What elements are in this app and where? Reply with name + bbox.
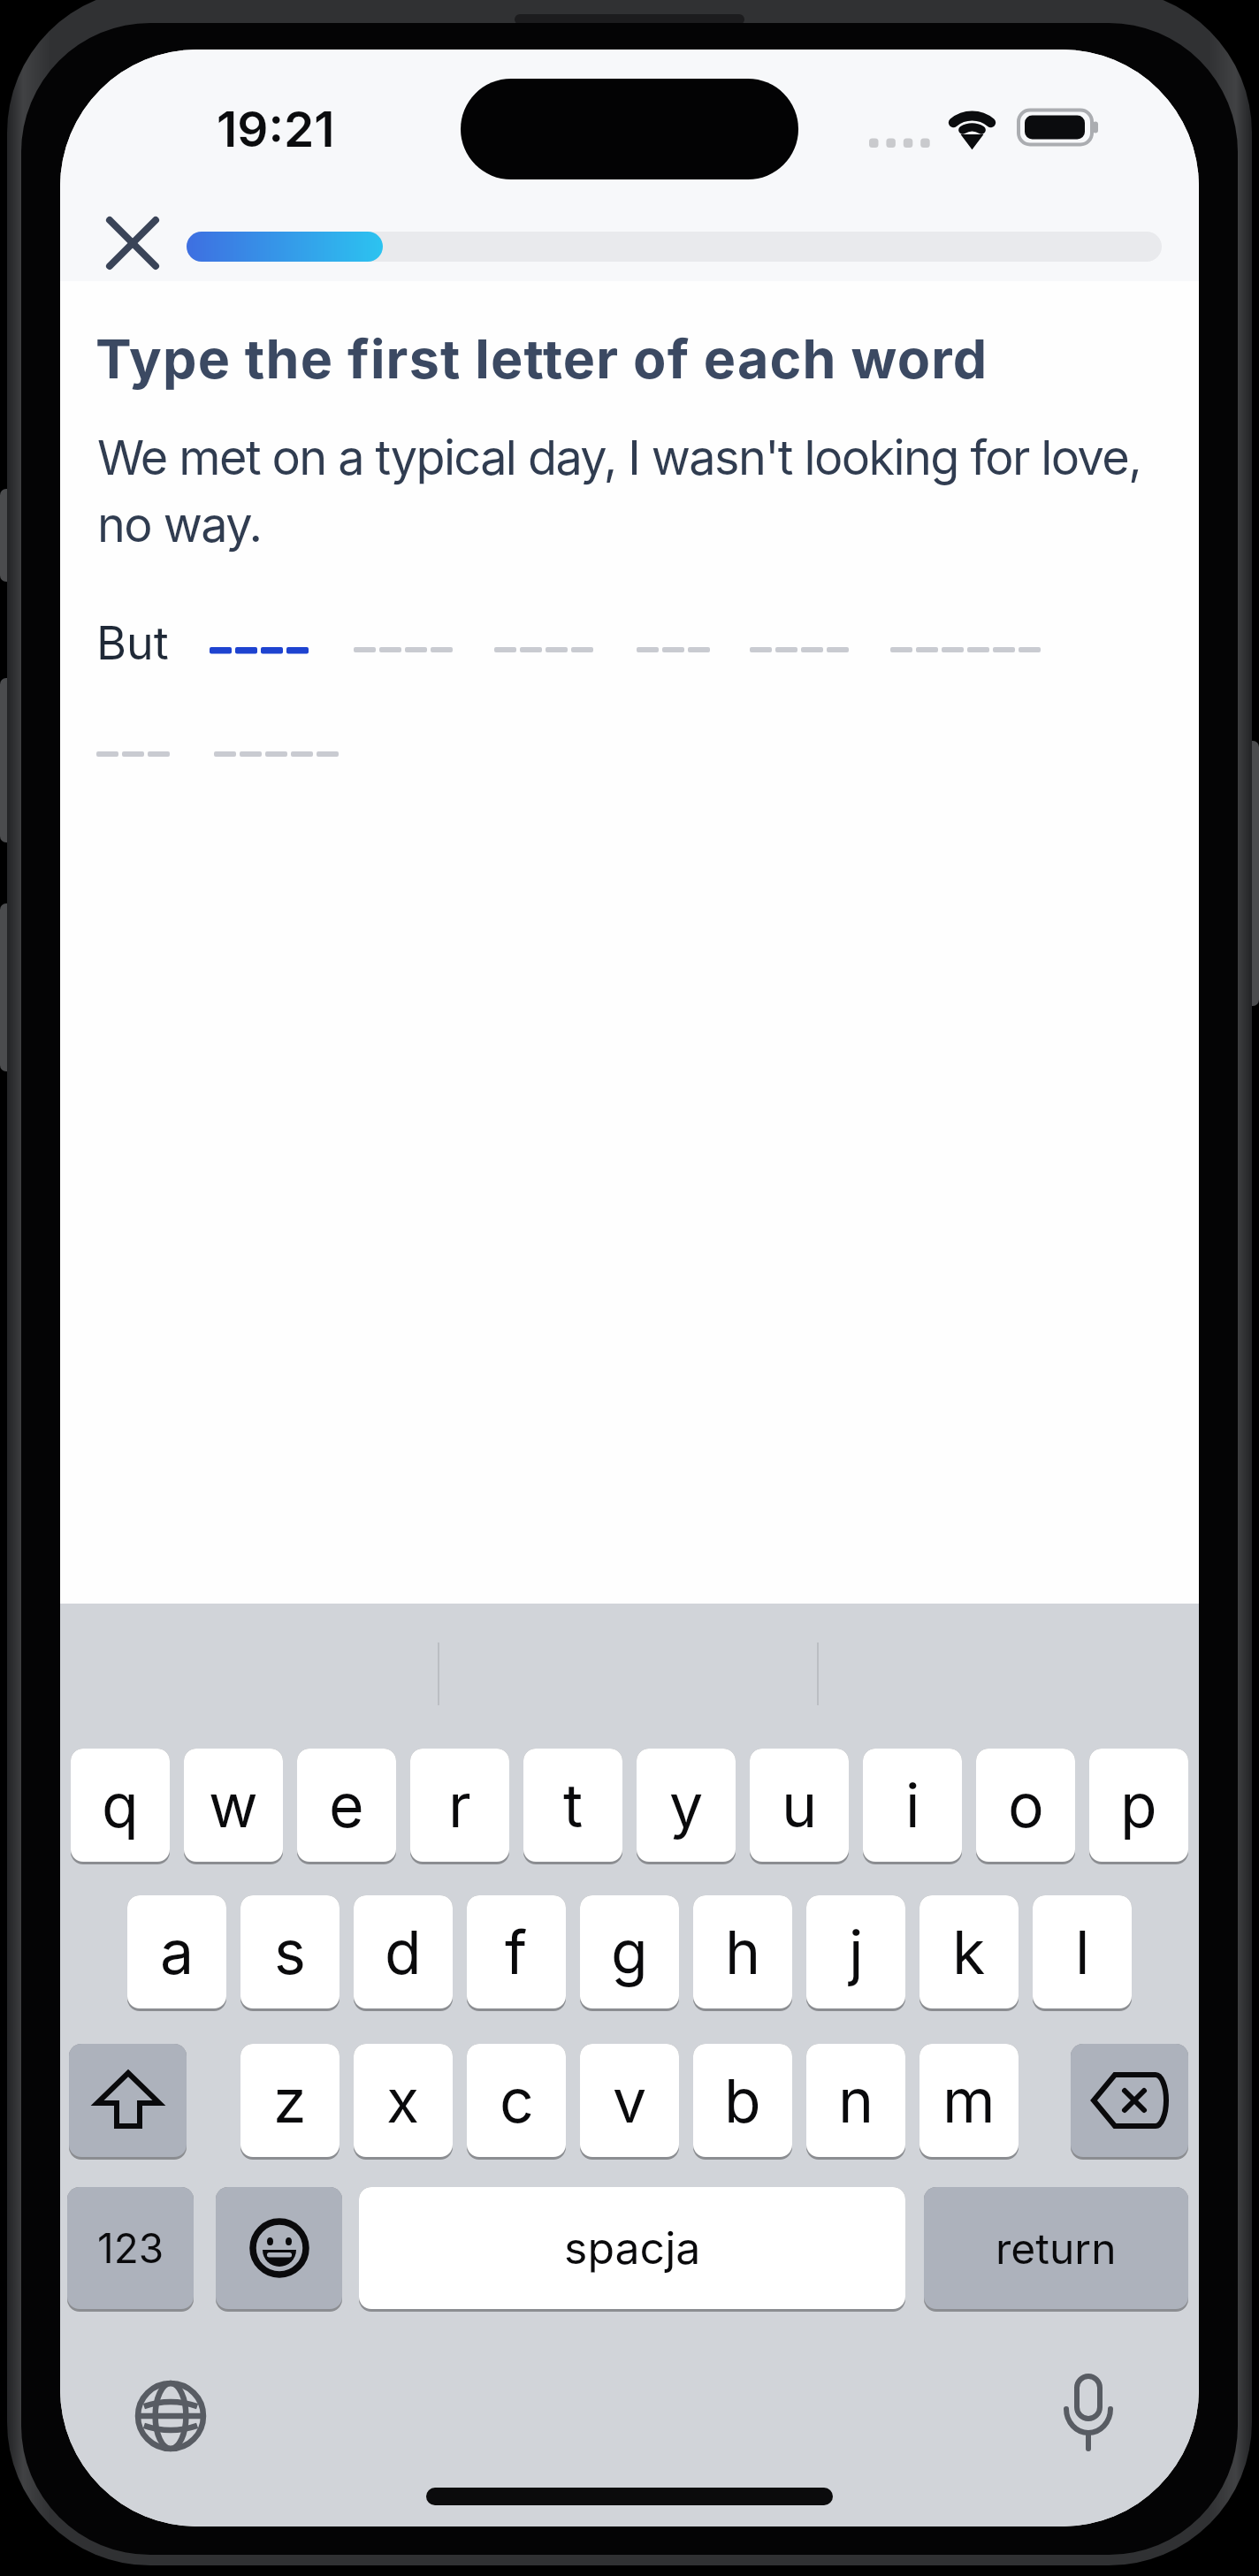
- staticText: o: [1008, 1769, 1044, 1841]
- button[interactable]: i: [863, 1749, 962, 1864]
- button[interactable]: p: [1089, 1749, 1188, 1864]
- staticText: return: [996, 2222, 1117, 2274]
- staticText: a: [160, 1916, 195, 1988]
- button[interactable]: w: [184, 1749, 283, 1864]
- button[interactable]: s: [240, 1895, 340, 2011]
- staticText: i: [905, 1769, 920, 1841]
- staticText: l: [1075, 1916, 1090, 1988]
- button[interactable]: 123: [67, 2187, 194, 2312]
- button[interactable]: q: [71, 1749, 170, 1864]
- staticText: j: [849, 1916, 864, 1988]
- button[interactable]: t: [523, 1749, 622, 1864]
- staticText: no way.: [97, 496, 262, 553]
- button[interactable]: [1071, 2044, 1188, 2160]
- staticText: r: [448, 1769, 471, 1841]
- button[interactable]: v: [580, 2044, 679, 2160]
- button[interactable]: d: [354, 1895, 453, 2011]
- staticText: s: [274, 1916, 306, 1988]
- button[interactable]: e: [297, 1749, 396, 1864]
- button[interactable]: u: [750, 1749, 849, 1864]
- button[interactable]: a: [127, 1895, 226, 2011]
- button[interactable]: r: [410, 1749, 509, 1864]
- staticText: v: [613, 2064, 647, 2137]
- staticText: But: [96, 615, 169, 671]
- button[interactable]: [98, 209, 167, 278]
- button[interactable]: c: [467, 2044, 566, 2160]
- button[interactable]: h: [693, 1895, 792, 2011]
- button[interactable]: x: [354, 2044, 453, 2160]
- staticText: d: [385, 1916, 422, 1988]
- button[interactable]: l: [1033, 1895, 1132, 2011]
- staticText: y: [669, 1769, 704, 1841]
- button[interactable]: spacja: [359, 2187, 905, 2312]
- staticText: k: [952, 1916, 986, 1988]
- button[interactable]: [216, 2187, 342, 2312]
- button[interactable]: b: [693, 2044, 792, 2160]
- staticText: spacja: [564, 2222, 701, 2275]
- staticText: q: [102, 1769, 139, 1841]
- staticText: b: [724, 2064, 761, 2137]
- staticText: u: [782, 1769, 818, 1841]
- staticText: 19:21: [217, 100, 335, 159]
- button[interactable]: return: [924, 2187, 1188, 2312]
- staticText: n: [838, 2064, 874, 2137]
- staticText: x: [386, 2064, 420, 2137]
- staticText: w: [209, 1769, 258, 1841]
- button[interactable]: j: [806, 1895, 905, 2011]
- staticText: m: [942, 2064, 996, 2137]
- staticText: 123: [97, 2223, 164, 2273]
- button[interactable]: k: [919, 1895, 1019, 2011]
- staticText: c: [500, 2064, 534, 2137]
- staticText: e: [329, 1769, 364, 1841]
- button[interactable]: n: [806, 2044, 905, 2160]
- staticText: h: [725, 1916, 761, 1988]
- staticText: Type the first letter of each word: [95, 326, 988, 392]
- staticText: z: [273, 2064, 307, 2137]
- button[interactable]: z: [240, 2044, 340, 2160]
- staticText: t: [563, 1769, 584, 1841]
- staticText: p: [1120, 1769, 1157, 1841]
- button[interactable]: g: [580, 1895, 679, 2011]
- button[interactable]: f: [467, 1895, 566, 2011]
- button[interactable]: [69, 2044, 187, 2160]
- button[interactable]: y: [637, 1749, 736, 1864]
- staticText: f: [505, 1916, 528, 1988]
- button[interactable]: o: [976, 1749, 1075, 1864]
- button[interactable]: m: [919, 2044, 1019, 2160]
- staticText: g: [611, 1916, 648, 1988]
- staticText: We met on a typical day, I wasn't lookin…: [97, 429, 1141, 486]
